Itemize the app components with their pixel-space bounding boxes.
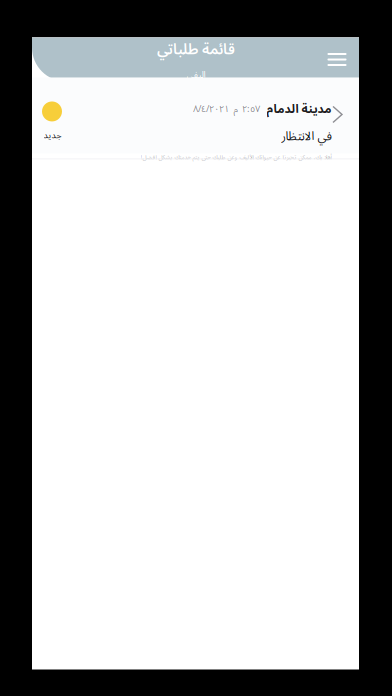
staticText: م [233, 99, 238, 119]
staticText: أهلا بك، ممكن تخبرنا عن حيواتك الأليف وع… [140, 151, 331, 163]
staticText: اليفي [186, 65, 205, 85]
staticText: قائمة طلباتي [156, 34, 234, 65]
staticText: جديد [43, 126, 61, 145]
button[interactable]: Menu [315, 37, 359, 81]
staticText: في الانتظار [281, 124, 331, 149]
button[interactable]: جديد [32, 82, 359, 159]
staticText: ٢:٥٧ [242, 99, 260, 119]
staticText: مدينة الدمام [266, 96, 331, 122]
staticText: ٨/٤/٢٠٢١ [193, 99, 229, 119]
